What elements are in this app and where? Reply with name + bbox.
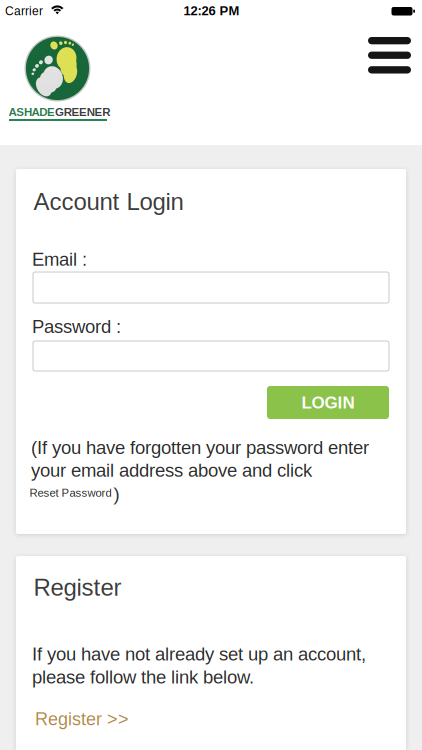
staticText: Account Login <box>33 188 183 215</box>
staticText: your email address above and click <box>31 460 312 481</box>
button[interactable]: Menu <box>368 37 411 73</box>
staticText: Reset Password <box>29 486 111 499</box>
staticText: Email : <box>32 249 87 270</box>
button[interactable]: Reset Password <box>29 486 111 499</box>
staticText: please follow the link below. <box>32 667 254 687</box>
staticText: Register <box>33 574 121 601</box>
staticText: Register >> <box>35 709 129 729</box>
staticText: Carrier <box>5 4 43 18</box>
staticText: LOGIN <box>301 393 354 412</box>
staticText: ) <box>113 484 119 504</box>
staticText: (If you have forgotten your password ent… <box>31 437 369 458</box>
button[interactable]: Register >> <box>35 709 129 729</box>
staticText: 12:26 PM <box>183 3 239 18</box>
button[interactable]: LOGIN <box>267 386 389 419</box>
staticText: Password : <box>32 316 121 337</box>
staticText: If you have not already set up an accoun… <box>32 644 366 664</box>
staticText: GREENER <box>55 105 110 118</box>
staticText: ASHADE <box>8 105 55 118</box>
